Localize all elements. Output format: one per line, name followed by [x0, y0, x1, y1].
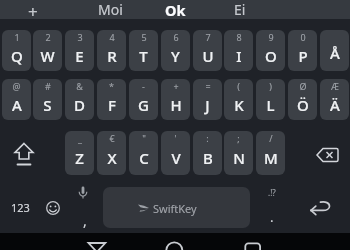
staticText: *: [109, 80, 114, 92]
staticText: 123: [11, 200, 30, 215]
staticText: G: [138, 95, 149, 115]
button[interactable]: [238, 233, 272, 250]
staticText: K: [234, 95, 244, 115]
button[interactable]: 0: [288, 30, 317, 71]
staticText: Ø: [299, 80, 307, 92]
button[interactable]: ;: [224, 131, 253, 175]
button[interactable]: SwiftKey: [103, 187, 250, 228]
button[interactable]: ": [129, 131, 158, 175]
staticText: M: [264, 148, 278, 168]
staticText: 7: [205, 31, 211, 43]
button[interactable]: [304, 196, 336, 222]
staticText: @: [12, 80, 21, 92]
staticText: Ok: [165, 0, 186, 19]
staticText: ): [269, 80, 272, 92]
staticText: +: [173, 80, 179, 92]
button[interactable]: &: [65, 79, 94, 120]
staticText: 4: [109, 31, 115, 43]
staticText: ,: [83, 211, 87, 230]
staticText: H: [170, 95, 182, 115]
button[interactable]: ': [161, 131, 190, 175]
staticText: O: [265, 46, 277, 66]
staticText: C: [139, 148, 149, 168]
staticText: :: [206, 132, 209, 144]
staticText: W: [40, 46, 55, 66]
staticText: #: [45, 80, 51, 92]
staticText: Y: [171, 46, 180, 66]
staticText: E: [75, 46, 84, 66]
staticText: I: [236, 46, 242, 66]
button[interactable]: =: [193, 79, 222, 120]
staticText: D: [74, 95, 85, 115]
staticText: B: [203, 148, 213, 168]
staticText: Å: [330, 43, 340, 63]
button[interactable]: Moi: [75, 0, 145, 19]
button[interactable]: [82, 233, 116, 250]
staticText: SwiftKey: [153, 201, 197, 216]
staticText: ": [142, 132, 146, 144]
button[interactable]: Å: [320, 30, 349, 71]
staticText: P: [298, 46, 308, 66]
staticText: X: [107, 148, 117, 168]
staticText: ': [174, 132, 177, 144]
button[interactable]: [158, 233, 192, 250]
button[interactable]: -: [129, 79, 158, 120]
button[interactable]: /: [256, 131, 285, 175]
staticText: Moi: [98, 0, 123, 19]
button[interactable]: (: [224, 79, 253, 120]
button[interactable]: [44, 199, 62, 217]
button[interactable]: ): [256, 79, 285, 120]
button[interactable]: 1: [2, 30, 31, 71]
staticText: V: [171, 148, 181, 168]
button[interactable]: @: [2, 79, 31, 120]
staticText: .!?: [268, 187, 276, 198]
staticText: €: [109, 132, 115, 144]
staticText: 8: [236, 31, 242, 43]
staticText: L: [266, 95, 275, 115]
staticText: A: [12, 95, 22, 115]
button[interactable]: 9: [256, 30, 285, 71]
button[interactable]: ,: [72, 185, 96, 229]
staticText: &: [76, 80, 83, 92]
button[interactable]: €: [97, 131, 126, 175]
button[interactable]: 123: [4, 195, 36, 219]
staticText: S: [43, 95, 52, 115]
button[interactable]: .!?: [258, 185, 286, 229]
button[interactable]: Ok: [145, 0, 205, 19]
button[interactable]: *: [97, 79, 126, 120]
button[interactable]: :: [193, 131, 222, 175]
button[interactable]: 8: [224, 30, 253, 71]
staticText: =: [205, 80, 211, 92]
staticText: 2: [45, 31, 51, 43]
staticText: Ö: [297, 95, 309, 115]
staticText: N: [233, 148, 245, 168]
staticText: R: [107, 46, 117, 66]
staticText: T: [139, 46, 148, 66]
button[interactable]: Ei: [210, 0, 270, 19]
staticText: +: [28, 0, 38, 19]
staticText: /: [269, 132, 273, 144]
button[interactable]: 4: [97, 30, 126, 71]
staticText: 5: [141, 31, 147, 43]
staticText: U: [202, 46, 214, 66]
staticText: _: [78, 132, 82, 144]
staticText: .: [270, 208, 274, 226]
button[interactable]: [8, 136, 40, 170]
staticText: 1: [14, 31, 20, 43]
button[interactable]: [312, 144, 342, 166]
button[interactable]: +: [15, 0, 51, 19]
staticText: 0: [300, 31, 306, 43]
staticText: -: [142, 80, 145, 92]
button[interactable]: 2: [33, 30, 62, 71]
button[interactable]: 7: [193, 30, 222, 71]
button[interactable]: Ø: [288, 79, 317, 120]
button[interactable]: 3: [65, 30, 94, 71]
staticText: J: [205, 95, 210, 115]
button[interactable]: 5: [129, 30, 158, 71]
button[interactable]: Æ: [320, 79, 349, 120]
button[interactable]: _: [65, 131, 94, 175]
button[interactable]: +: [161, 79, 190, 120]
staticText: Ä: [330, 95, 340, 115]
button[interactable]: 6: [161, 30, 190, 71]
button[interactable]: #: [33, 79, 62, 120]
